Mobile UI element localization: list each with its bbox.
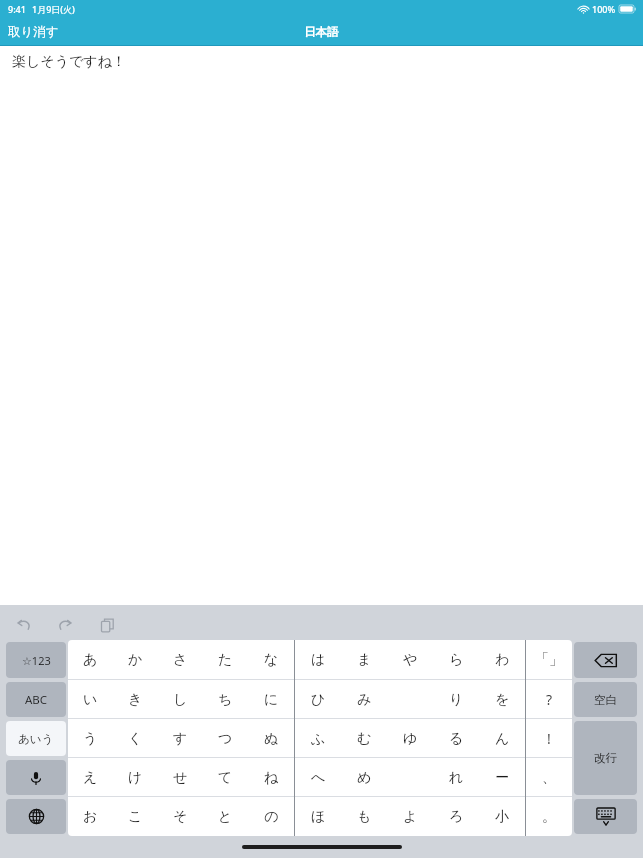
button[interactable]: あいう <box>6 721 66 756</box>
button[interactable]: ろ <box>433 797 479 836</box>
staticText: 9:41 <box>8 3 26 15</box>
button[interactable]: も <box>341 797 387 836</box>
staticText: 。 <box>542 808 556 826</box>
button[interactable]: せ <box>158 758 203 797</box>
button[interactable]: Undo <box>10 612 36 638</box>
button[interactable]: ゆ <box>387 719 433 758</box>
button[interactable]: ふ <box>295 719 341 758</box>
staticText: ふ <box>311 730 326 748</box>
staticText: 空白 <box>594 693 617 707</box>
button[interactable]: を <box>479 680 525 719</box>
button[interactable]: Switch keyboard <box>6 799 66 834</box>
staticText: み <box>357 691 372 709</box>
button[interactable]: わ <box>479 640 525 680</box>
button[interactable]: こ <box>113 797 158 836</box>
staticText: や <box>403 651 418 669</box>
staticText: 楽しそうですね！ <box>12 53 126 71</box>
button[interactable]: ほ <box>295 797 341 836</box>
button[interactable]: つ <box>203 719 248 758</box>
staticText: ろ <box>449 808 464 826</box>
button[interactable]: す <box>158 719 203 758</box>
button[interactable]: Paste <box>94 612 120 638</box>
button[interactable]: へ <box>295 758 341 797</box>
staticText: を <box>495 691 510 709</box>
staticText: も <box>357 808 372 826</box>
staticText: て <box>218 769 233 787</box>
staticText: お <box>83 808 98 826</box>
button[interactable]: ? <box>526 680 572 719</box>
button[interactable]: ひ <box>295 680 341 719</box>
button[interactable]: と <box>203 797 248 836</box>
button[interactable]: ー <box>479 758 525 797</box>
button[interactable]: 取り消す <box>0 20 67 44</box>
button[interactable] <box>387 758 433 797</box>
button[interactable]: む <box>341 719 387 758</box>
button[interactable]: Hide keyboard <box>574 799 637 834</box>
button[interactable]: け <box>113 758 158 797</box>
staticText: 100% <box>592 3 616 15</box>
staticText: 取り消す <box>8 24 59 40</box>
button[interactable]: 改行 <box>574 721 637 795</box>
button[interactable]: ま <box>341 640 387 680</box>
button[interactable]: く <box>113 719 158 758</box>
button[interactable]: 「」 <box>526 640 572 680</box>
button[interactable]: Redo <box>52 612 78 638</box>
button[interactable]: ら <box>433 640 479 680</box>
button[interactable]: ! <box>526 719 572 758</box>
button[interactable]: そ <box>158 797 203 836</box>
button[interactable]: 。 <box>526 797 572 836</box>
button[interactable]: ABC <box>6 682 66 717</box>
button[interactable]: の <box>248 797 294 836</box>
staticText: い <box>83 691 98 709</box>
staticText: め <box>357 769 372 787</box>
staticText: 1月9日(火) <box>32 3 75 15</box>
staticText: あいう <box>18 732 54 746</box>
button[interactable]: ね <box>248 758 294 797</box>
button[interactable] <box>387 680 433 719</box>
button[interactable]: Voice input <box>6 760 66 795</box>
staticText: 小 <box>495 808 509 826</box>
button[interactable]: ぬ <box>248 719 294 758</box>
button[interactable]: あ <box>68 640 113 680</box>
staticText: 日本語 <box>304 25 339 39</box>
button[interactable]: め <box>341 758 387 797</box>
button[interactable]: ん <box>479 719 525 758</box>
button[interactable]: る <box>433 719 479 758</box>
button[interactable]: は <box>295 640 341 680</box>
button[interactable]: れ <box>433 758 479 797</box>
staticText: さ <box>173 651 188 669</box>
button[interactable]: し <box>158 680 203 719</box>
button[interactable]: か <box>113 640 158 680</box>
staticText: こ <box>128 808 143 826</box>
button[interactable]: り <box>433 680 479 719</box>
button[interactable]: や <box>387 640 433 680</box>
staticText: ! <box>547 729 551 748</box>
button[interactable]: な <box>248 640 294 680</box>
button[interactable]: て <box>203 758 248 797</box>
button[interactable]: お <box>68 797 113 836</box>
button[interactable]: い <box>68 680 113 719</box>
staticText: す <box>173 730 188 748</box>
button[interactable]: に <box>248 680 294 719</box>
button[interactable]: ち <box>203 680 248 719</box>
button[interactable]: 空白 <box>574 682 637 717</box>
staticText: の <box>264 808 279 826</box>
button[interactable]: ☆123 <box>6 642 66 678</box>
button[interactable]: う <box>68 719 113 758</box>
button[interactable]: よ <box>387 797 433 836</box>
button[interactable]: 、 <box>526 758 572 797</box>
staticText: ABC <box>25 692 48 708</box>
staticText: き <box>128 691 143 709</box>
button[interactable]: さ <box>158 640 203 680</box>
button[interactable]: た <box>203 640 248 680</box>
button[interactable]: み <box>341 680 387 719</box>
staticText: へ <box>311 769 326 787</box>
button[interactable]: き <box>113 680 158 719</box>
staticText: え <box>83 769 98 787</box>
staticText: ら <box>449 651 464 669</box>
button[interactable]: Delete <box>574 642 637 678</box>
button[interactable]: え <box>68 758 113 797</box>
staticText: せ <box>173 769 188 787</box>
staticText: そ <box>173 808 188 826</box>
button[interactable]: 小 <box>479 797 525 836</box>
